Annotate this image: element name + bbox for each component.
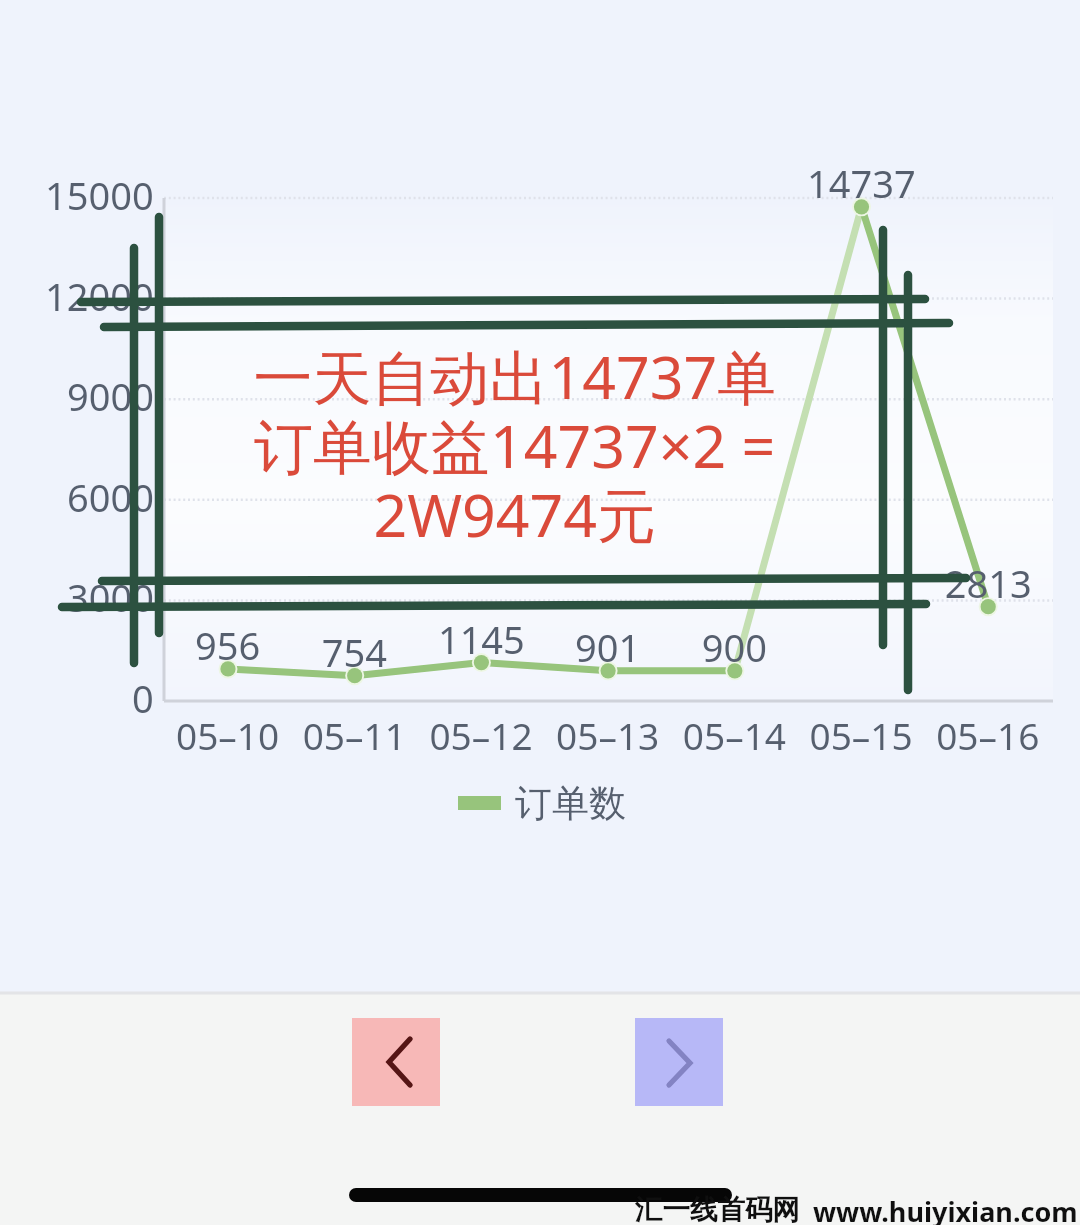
button[interactable]: Back [352, 1018, 440, 1106]
button[interactable]: Forward [635, 1018, 723, 1106]
